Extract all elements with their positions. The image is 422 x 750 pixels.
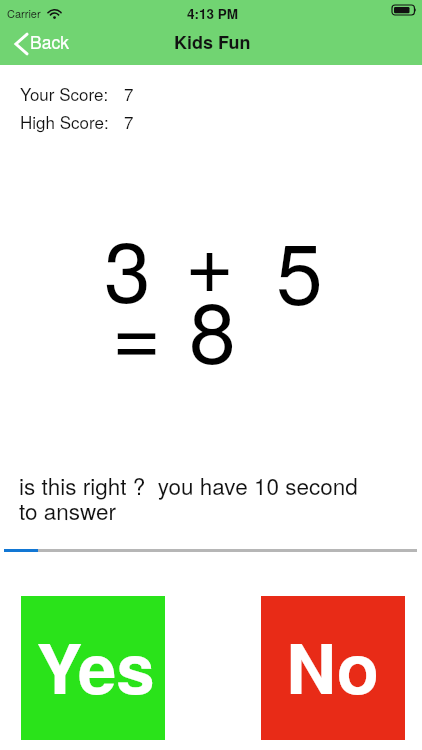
- staticText: Your Score:: [20, 81, 109, 105]
- other: Wi-Fi: [47, 8, 62, 19]
- other: Back: [15, 33, 28, 55]
- button[interactable]: Yes: [21, 596, 165, 740]
- button[interactable]: No: [261, 596, 405, 740]
- staticText: 3: [104, 207, 151, 327]
- staticText: Back: [30, 29, 69, 54]
- staticText: 7: [124, 109, 134, 133]
- staticText: High Score:: [20, 109, 109, 133]
- staticText: Carrier: [7, 5, 41, 21]
- staticText: 5: [276, 209, 323, 329]
- button[interactable]: Back: [3, 26, 81, 64]
- staticText: 7: [124, 81, 134, 105]
- staticText: Kids Fun: [174, 29, 251, 55]
- staticText: is this right ? you have 10 second to an…: [19, 469, 371, 526]
- other: Battery: [392, 5, 416, 15]
- staticText: =: [112, 269, 162, 389]
- staticText: 4:13 PM: [187, 4, 239, 23]
- staticText: Yes: [36, 616, 155, 715]
- staticText: 8: [189, 268, 236, 388]
- staticText: No: [286, 616, 379, 715]
- staticText: +: [185, 197, 235, 317]
